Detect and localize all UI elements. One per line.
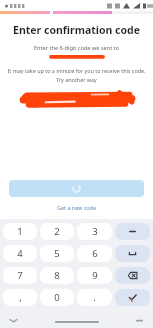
button[interactable]: 9	[77, 267, 112, 284]
other: Keyboard settings	[136, 318, 143, 323]
staticText: 9	[92, 269, 98, 282]
staticText: 3	[92, 225, 98, 238]
button[interactable]: Enter	[115, 289, 150, 306]
button[interactable]: 8	[40, 267, 74, 284]
staticText: 5	[54, 247, 60, 260]
button[interactable]: .	[77, 289, 112, 306]
staticText: It may take up to a minute for you to re…	[6, 67, 147, 74]
button[interactable]: 0	[40, 289, 74, 306]
button[interactable]: 5	[40, 245, 74, 262]
staticText: 2	[54, 225, 60, 238]
staticText: Enter the 6-digit code we sent to	[0, 44, 153, 52]
staticText: 0	[54, 291, 60, 304]
button[interactable]: 7	[3, 267, 37, 284]
staticText: Get a new code	[57, 204, 96, 211]
button[interactable]: 2	[40, 223, 74, 240]
button[interactable]: 1	[3, 223, 37, 240]
button[interactable]: Try another way	[0, 76, 153, 83]
staticText: 7	[17, 269, 23, 282]
other: Hide keyboard	[10, 317, 17, 324]
button[interactable]: Get a new code	[0, 204, 153, 211]
button[interactable]: 3	[77, 223, 112, 240]
button[interactable]: Space	[115, 245, 150, 262]
staticText: 8	[54, 269, 60, 282]
staticText: Try another way	[56, 76, 97, 83]
staticText: .	[93, 291, 96, 304]
staticText: Enter confirmation code	[0, 23, 153, 37]
staticText: ,	[19, 291, 22, 304]
staticText: 1	[17, 225, 23, 238]
button[interactable]: Dash	[115, 223, 150, 240]
button[interactable]: Confirm	[9, 180, 144, 197]
staticText: 4	[17, 247, 23, 260]
button[interactable]: ,	[3, 289, 37, 306]
staticText: 6	[92, 247, 98, 260]
button[interactable]: Backspace	[115, 267, 150, 284]
button[interactable]: 6	[77, 245, 112, 262]
button[interactable]: 4	[3, 245, 37, 262]
